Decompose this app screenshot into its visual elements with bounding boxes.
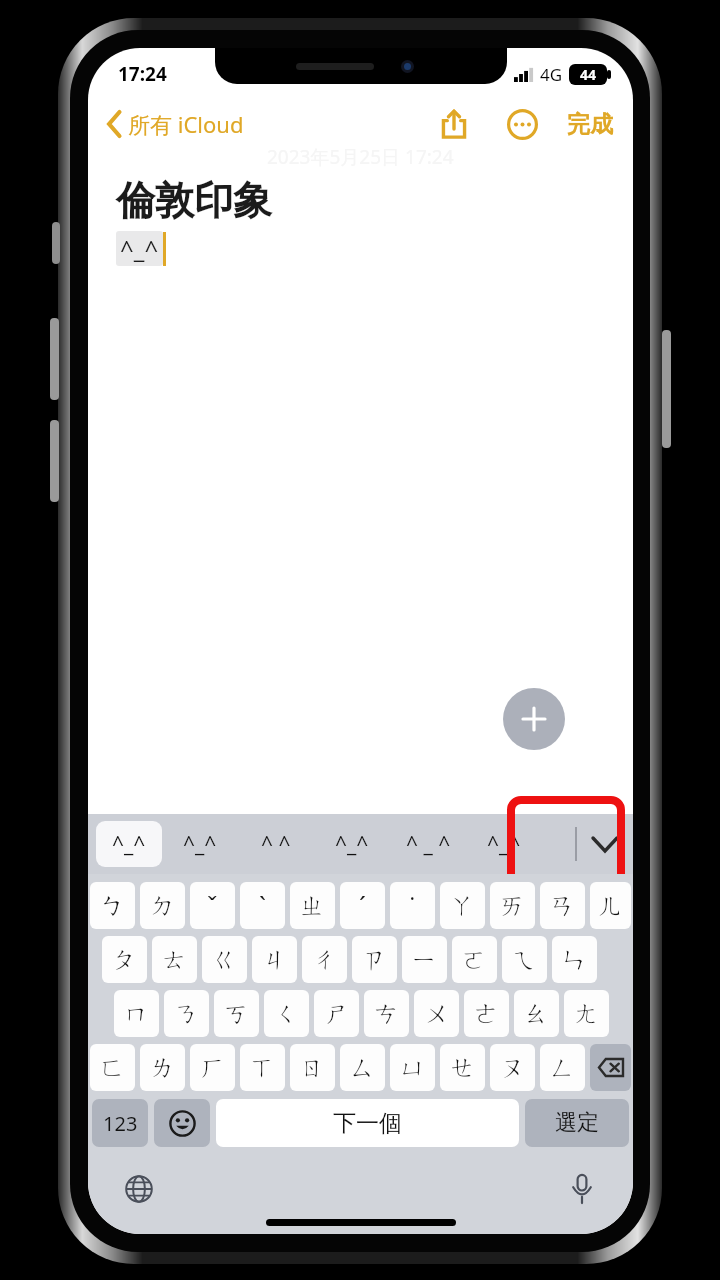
staticText: ㄊ xyxy=(162,944,188,975)
button[interactable]: ˙ xyxy=(390,882,435,929)
button[interactable]: ㄉ xyxy=(140,882,185,929)
button[interactable]: More options xyxy=(499,101,545,147)
button[interactable]: ㄊ xyxy=(152,936,197,983)
staticText: ㄓ xyxy=(300,890,326,921)
button[interactable]: Share xyxy=(431,101,477,147)
button[interactable]: ㄙ xyxy=(340,1044,385,1091)
staticText: ㄔ xyxy=(312,944,338,975)
button[interactable]: ㄇ xyxy=(114,990,159,1037)
staticText: ㄛ xyxy=(462,944,488,975)
button[interactable]: ㄓ xyxy=(290,882,335,929)
button[interactable]: ^_^ xyxy=(96,821,162,867)
button[interactable]: ㄢ xyxy=(540,882,585,929)
staticText: ㄑ xyxy=(274,998,300,1029)
other: Volume up xyxy=(50,318,59,400)
staticText: ㄖ xyxy=(300,1052,326,1083)
button[interactable]: ㄐ xyxy=(252,936,297,983)
staticText: ㄟ xyxy=(512,944,538,975)
button[interactable]: ㄔ xyxy=(302,936,347,983)
other: Silent switch xyxy=(52,222,60,264)
button[interactable]: ㄏ xyxy=(190,1044,235,1091)
button[interactable]: ˊ xyxy=(340,882,385,929)
button[interactable]: 123 xyxy=(92,1099,148,1147)
staticText: ㄡ xyxy=(500,1052,526,1083)
staticText: ㄚ xyxy=(450,890,476,921)
button[interactable]: ㄜ xyxy=(464,990,509,1037)
button[interactable]: 所有 iCloud xyxy=(100,103,252,145)
staticText: ^_^ xyxy=(183,830,217,859)
button[interactable]: ㄛ xyxy=(452,936,497,983)
button[interactable]: 完成 xyxy=(561,104,619,145)
button[interactable]: Switch keyboard xyxy=(116,1166,162,1212)
staticText: ㄩ xyxy=(400,1052,426,1083)
button[interactable]: ㄈ xyxy=(90,1044,135,1091)
staticText: ㄙ xyxy=(350,1052,376,1083)
button[interactable]: Emoji xyxy=(154,1099,210,1147)
staticText: ㄈ xyxy=(100,1052,126,1083)
button[interactable]: ㄨ xyxy=(414,990,459,1037)
button[interactable]: ㄦ xyxy=(590,882,631,929)
staticText: ㄝ xyxy=(450,1052,476,1083)
staticText: ㄢ xyxy=(550,890,576,921)
button[interactable]: ㄗ xyxy=(352,936,397,983)
button[interactable]: ^ ^ xyxy=(238,821,314,867)
button[interactable]: ㄅ xyxy=(90,882,135,929)
staticText: 倫敦印象 xyxy=(116,176,272,225)
button[interactable]: Hide candidates xyxy=(577,814,633,874)
staticText: ㄆ xyxy=(112,944,138,975)
button[interactable]: ㄒ xyxy=(240,1044,285,1091)
button[interactable]: ㄘ xyxy=(364,990,409,1037)
button[interactable]: ㄟ xyxy=(502,936,547,983)
button[interactable]: ㄝ xyxy=(440,1044,485,1091)
staticText: ㄒ xyxy=(250,1052,276,1083)
button[interactable]: ㄎ xyxy=(214,990,259,1037)
other: Volume down xyxy=(50,420,59,502)
staticText: ㄜ xyxy=(474,998,500,1029)
button[interactable]: ㄍ xyxy=(202,936,247,983)
button[interactable]: Dictation xyxy=(559,1166,605,1212)
other: Power xyxy=(662,330,671,448)
button[interactable]: Add attachment xyxy=(503,688,565,750)
staticText: ˙ xyxy=(410,889,415,923)
button[interactable]: ㄖ xyxy=(290,1044,335,1091)
button[interactable]: 選定 xyxy=(525,1099,629,1147)
button[interactable]: ㄌ xyxy=(140,1044,185,1091)
button[interactable]: ㄠ xyxy=(514,990,559,1037)
button[interactable]: ㄥ xyxy=(540,1044,585,1091)
button[interactable]: ㄑ xyxy=(264,990,309,1037)
staticText: ㄉ xyxy=(150,890,176,921)
button[interactable]: ^ _ ^ xyxy=(390,821,466,867)
button[interactable]: ㄧ xyxy=(402,936,447,983)
staticText: 選定 xyxy=(555,1109,599,1137)
button[interactable]: ㄆ xyxy=(102,936,147,983)
staticText: ㄨ xyxy=(424,998,450,1029)
button[interactable]: ^_^ xyxy=(314,821,390,867)
staticText: ㄗ xyxy=(362,944,388,975)
button[interactable]: ㄩ xyxy=(390,1044,435,1091)
button[interactable]: ˋ xyxy=(240,882,285,929)
staticText: 下一個 xyxy=(333,1109,402,1138)
button[interactable]: ㄤ xyxy=(564,990,609,1037)
button[interactable]: ^_^ xyxy=(466,821,542,867)
staticText: ㄐ xyxy=(262,944,288,975)
button[interactable]: ㄋ xyxy=(164,990,209,1037)
staticText: ㄣ xyxy=(562,944,588,975)
staticText: ˋ xyxy=(259,889,267,923)
staticText: ^ _ ^ xyxy=(406,830,451,859)
button[interactable]: ㄣ xyxy=(552,936,597,983)
staticText: ㄦ xyxy=(598,890,624,921)
button[interactable]: ㄚ xyxy=(440,882,485,929)
staticText: 123 xyxy=(103,1110,138,1137)
button[interactable]: ㄡ xyxy=(490,1044,535,1091)
staticText: 4G xyxy=(540,63,563,86)
button[interactable]: 下一個 xyxy=(216,1099,519,1147)
button[interactable]: ˇ xyxy=(190,882,235,929)
staticText: ㄍ xyxy=(212,944,238,975)
staticText: ^_^ xyxy=(487,830,521,859)
staticText: ㄤ xyxy=(574,998,600,1029)
button[interactable]: ㄕ xyxy=(314,990,359,1037)
button[interactable]: ㄞ xyxy=(490,882,535,929)
staticText: ㄠ xyxy=(524,998,550,1029)
button[interactable]: ^_^ xyxy=(162,821,238,867)
button[interactable]: Backspace xyxy=(590,1044,631,1091)
